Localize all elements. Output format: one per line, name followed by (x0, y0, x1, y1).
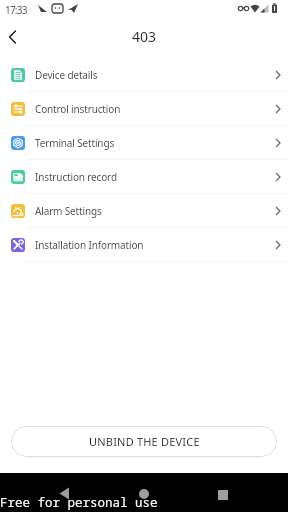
staticText: Free for personal use (0, 494, 158, 511)
staticText: Control instruction (35, 102, 121, 116)
button[interactable]: UNBIND THE DEVICE (11, 426, 277, 457)
staticText: Instruction record (35, 170, 117, 184)
staticText: 403 (132, 27, 157, 46)
button[interactable]: Instruction record (0, 160, 288, 194)
button[interactable]: Terminal Settings (0, 126, 288, 160)
button[interactable]: Device details (0, 58, 288, 92)
staticText: Device details (35, 68, 98, 82)
button[interactable]: Alarm Settings (0, 194, 288, 228)
button[interactable]: Control instruction (0, 92, 288, 126)
button[interactable]: Installation Information (0, 228, 288, 262)
staticText: UNBIND THE DEVICE (89, 434, 200, 449)
button[interactable] (3, 27, 23, 47)
staticText: Installation Information (35, 238, 144, 252)
staticText: Alarm Settings (35, 204, 102, 218)
staticText: 17:33 (5, 3, 27, 17)
staticText: Terminal Settings (35, 136, 115, 150)
